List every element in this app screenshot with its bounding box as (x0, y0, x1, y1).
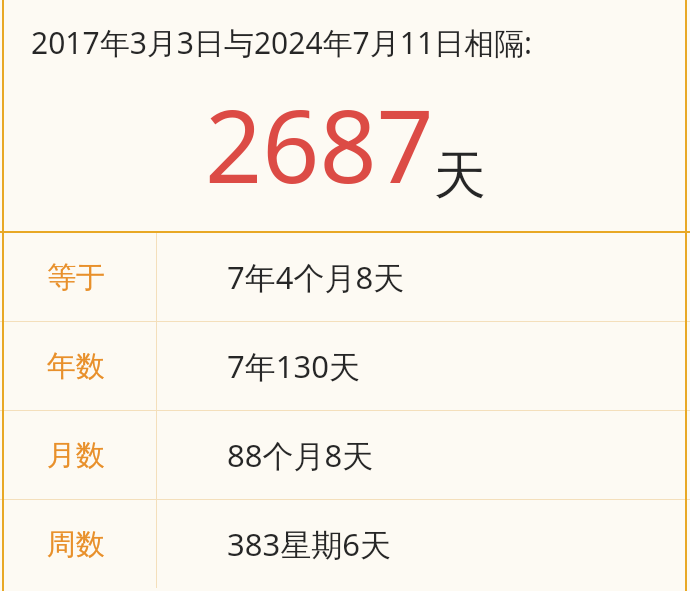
button[interactable]: 年数 (0, 322, 690, 410)
staticText: 等于 (47, 259, 105, 296)
button[interactable]: 月数 (0, 411, 690, 499)
staticText: 7年130天 (227, 345, 360, 387)
staticText: 月数 (47, 437, 105, 474)
staticText: 周数 (47, 526, 105, 563)
staticText: 天 (434, 143, 486, 209)
staticText: 7年4个月8天 (227, 256, 405, 298)
button[interactable]: 周数 (0, 500, 690, 588)
button[interactable]: 等于 (0, 233, 690, 321)
staticText: 年数 (47, 348, 105, 385)
staticText: 383星期6天 (227, 523, 391, 565)
staticText: 88个月8天 (227, 434, 374, 476)
staticText: 2687 (205, 76, 434, 212)
staticText: 2017年3月3日与2024年7月11日相隔: (31, 22, 533, 63)
